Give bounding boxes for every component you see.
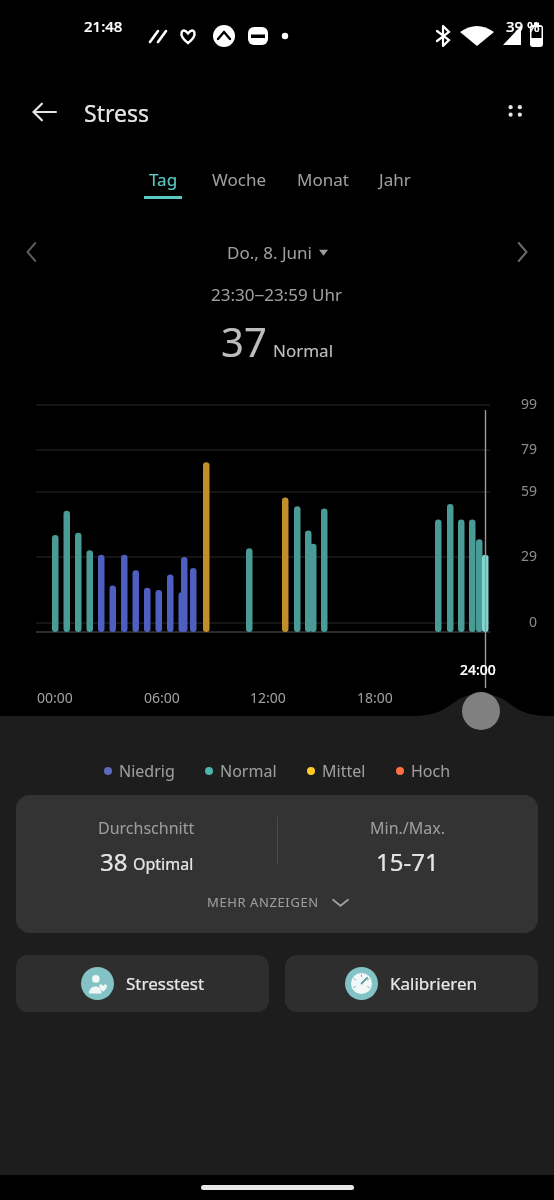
button[interactable]: Monat — [293, 168, 353, 196]
staticText: Do., 8. Juni — [227, 241, 312, 264]
staticText: 21:48 — [84, 16, 123, 36]
staticText: Kalibrieren — [390, 972, 478, 995]
staticText: 38 — [100, 845, 128, 878]
staticText: Woche — [212, 168, 267, 191]
staticText: Normal — [273, 339, 334, 362]
staticText: 18:00 — [357, 688, 393, 707]
button[interactable]: Back — [22, 89, 68, 135]
staticText: Hoch — [411, 760, 451, 782]
staticText: 29 — [521, 546, 538, 565]
staticText: Mittel — [322, 760, 366, 782]
staticText: Min./Max. — [370, 817, 446, 839]
staticText: Stresstest — [126, 972, 205, 995]
staticText: Normal — [220, 760, 277, 782]
button[interactable]: Do., 8. Juni — [219, 237, 336, 268]
button[interactable]: Stresstest — [16, 955, 269, 1012]
staticText: Jahr — [379, 168, 411, 191]
staticText: 59 — [521, 481, 538, 500]
button[interactable]: MEHR ANZEIGEN — [197, 889, 358, 915]
staticText: 39 % — [506, 16, 540, 36]
button[interactable]: More options — [492, 89, 538, 135]
button[interactable]: Previous day — [12, 232, 52, 272]
staticText: 15-71 — [376, 845, 439, 878]
staticText: 0 — [529, 612, 538, 631]
staticText: Tag — [149, 168, 178, 191]
staticText: Durchschnitt — [98, 817, 195, 839]
staticText: 00:00 — [37, 688, 73, 707]
button[interactable]: Tag — [140, 168, 186, 199]
staticText: 37 — [221, 314, 267, 368]
staticText: 99 — [521, 394, 538, 413]
button[interactable]: Kalibrieren — [285, 955, 538, 1012]
staticText: Niedrig — [119, 760, 175, 782]
button[interactable]: Jahr — [375, 168, 415, 196]
staticText: 23:30‒23:59 Uhr — [211, 283, 343, 306]
staticText: Stress — [84, 97, 149, 128]
staticText: MEHR ANZEIGEN — [207, 893, 319, 911]
button[interactable]: Next day — [502, 232, 542, 272]
staticText: 79 — [521, 439, 538, 458]
staticText: 24:00 — [460, 660, 496, 679]
staticText: 06:00 — [144, 688, 180, 707]
staticText: Optimal — [133, 853, 194, 875]
staticText: Monat — [297, 168, 349, 191]
staticText: 12:00 — [250, 688, 286, 707]
button[interactable]: Durchschnitt — [16, 795, 538, 933]
button[interactable]: Woche — [208, 168, 271, 196]
